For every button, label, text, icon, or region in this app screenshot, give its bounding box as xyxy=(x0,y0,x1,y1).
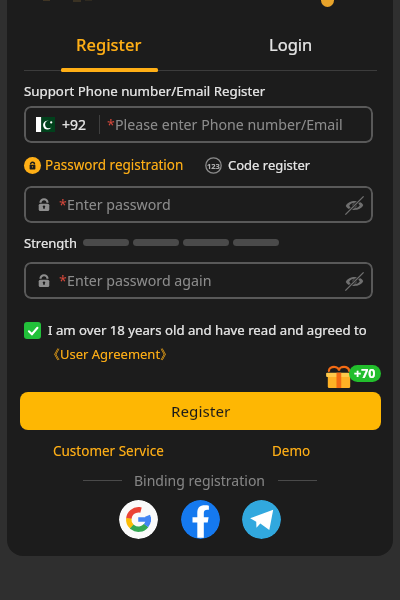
button[interactable]: Show password xyxy=(341,268,367,294)
button[interactable]: Customer Service xyxy=(53,442,164,460)
button[interactable]: Language xyxy=(321,0,334,7)
staticText: Customer Service xyxy=(53,442,164,460)
staticText: * xyxy=(59,271,67,290)
staticText: Register xyxy=(171,401,231,421)
staticText: 123 xyxy=(207,161,220,171)
staticText: Support Phone number/Email Register xyxy=(24,82,266,100)
button[interactable]: Register xyxy=(18,26,200,62)
button[interactable] xyxy=(24,322,41,339)
button[interactable]: 《User Agreement》 xyxy=(47,345,174,363)
staticText: Demo xyxy=(272,442,311,460)
button[interactable]: * xyxy=(24,262,373,299)
staticText: +70 xyxy=(354,365,376,382)
button[interactable]: Telegram xyxy=(242,500,281,539)
button[interactable]: Login xyxy=(200,26,382,62)
staticText: Strength xyxy=(24,234,78,250)
button[interactable]: +92 xyxy=(24,106,373,143)
staticText: Register xyxy=(76,33,142,55)
staticText: Code register xyxy=(228,156,311,174)
staticText: I am over 18 years old and have read and… xyxy=(48,321,367,339)
button[interactable]: Show password xyxy=(341,192,367,218)
staticText: Binding registration xyxy=(134,471,266,490)
staticText: Enter password again xyxy=(67,271,212,290)
button[interactable]: Register xyxy=(20,392,381,430)
staticText: Password registration xyxy=(45,156,184,174)
staticText: * xyxy=(107,115,115,134)
button[interactable]: Facebook xyxy=(181,500,220,539)
staticText: Enter password xyxy=(67,195,171,214)
staticText: * xyxy=(59,195,67,214)
staticText: Login xyxy=(269,33,313,55)
staticText: Please enter Phone number/Email xyxy=(115,115,343,134)
button[interactable]: Demo xyxy=(272,442,311,460)
staticText: 《User Agreement》 xyxy=(47,345,174,363)
button[interactable]: Password registration xyxy=(24,156,184,174)
staticText: +92 xyxy=(62,115,87,134)
button[interactable]: Google xyxy=(119,500,158,539)
button[interactable]: 123 xyxy=(205,156,311,174)
button[interactable]: * xyxy=(24,186,373,223)
